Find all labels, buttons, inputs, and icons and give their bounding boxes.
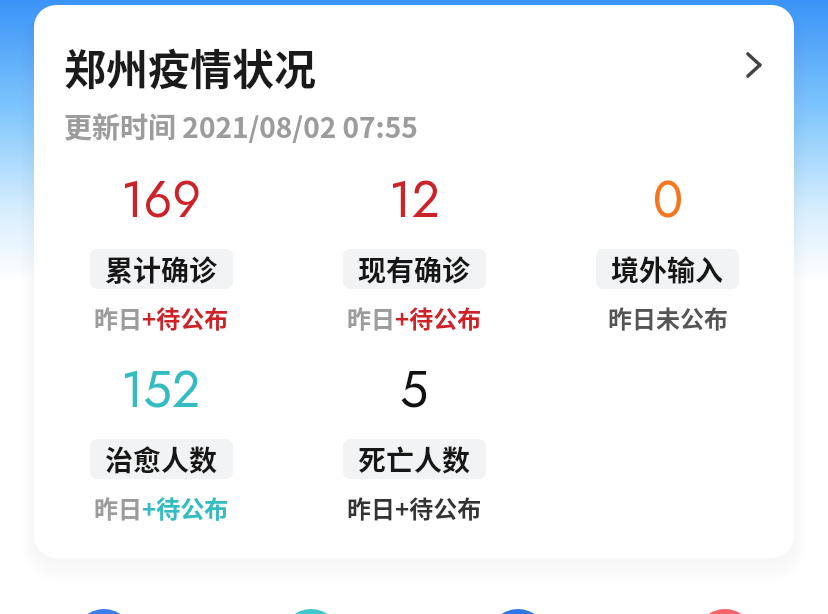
button[interactable]: 我的 (696, 609, 754, 614)
staticText: 更新时间 2021/08/02 07:55 (64, 106, 418, 147)
staticText: 昨日+待公布 (94, 490, 229, 525)
staticText: 昨日未公布 (608, 300, 728, 335)
staticText: 169 (121, 163, 202, 235)
staticText: 现有确诊 (358, 249, 471, 289)
button[interactable]: 169 (34, 163, 288, 335)
button[interactable]: 首页 (75, 609, 133, 614)
staticText: 5 (400, 353, 429, 425)
staticText: 治愈人数 (105, 439, 218, 479)
button[interactable]: 0 (541, 163, 794, 335)
staticText: 境外输入 (611, 249, 724, 289)
button[interactable]: 消息 (489, 609, 547, 614)
staticText: 152 (121, 353, 201, 425)
staticText: 死亡人数 (358, 439, 471, 479)
staticText: 郑州疫情状况 (64, 36, 317, 97)
staticText: 12 (389, 163, 440, 235)
button[interactable]: 服务 (282, 609, 340, 614)
button[interactable]: 12 (288, 163, 541, 335)
staticText: 昨日+待公布 (94, 300, 229, 335)
staticText: 昨日+待公布 (347, 300, 482, 335)
staticText: 累计确诊 (105, 249, 218, 289)
button[interactable]: 5 (288, 353, 541, 525)
staticText: 0 (653, 163, 683, 235)
staticText: 昨日+待公布 (347, 490, 482, 525)
button[interactable]: 152 (34, 353, 288, 525)
button[interactable]: 郑州疫情状况 (64, 36, 772, 147)
button[interactable]: 查看详情 (729, 41, 777, 89)
